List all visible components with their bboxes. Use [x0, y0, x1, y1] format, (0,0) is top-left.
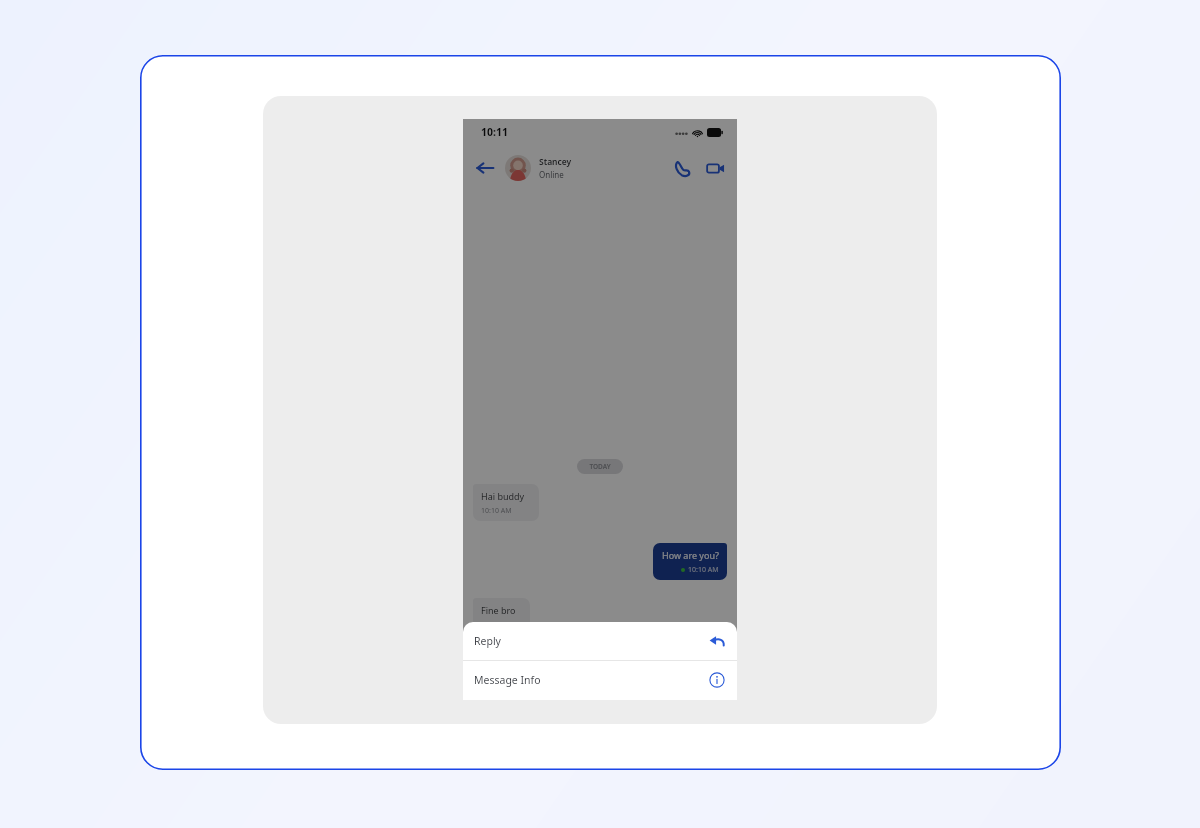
staticText: 10:10 AM — [481, 506, 512, 516]
staticText: I am fine too — [665, 655, 719, 667]
button[interactable]: Voice call — [673, 159, 692, 178]
staticText: Hai buddy — [481, 490, 525, 502]
staticText: 10:11 AM — [688, 671, 719, 681]
button[interactable] — [505, 155, 531, 181]
button[interactable]: Video call — [706, 159, 725, 178]
button[interactable]: Message Info — [463, 661, 737, 699]
button[interactable]: How are you? — [653, 543, 727, 580]
button[interactable]: Back — [475, 158, 495, 178]
button[interactable]: Fine bro — [473, 598, 530, 635]
staticText: 10:11 AM — [481, 620, 512, 630]
staticText: How are you? — [662, 549, 719, 561]
other: Reply — [709, 633, 725, 649]
staticText: Stancey — [539, 156, 572, 168]
staticText: Reply — [474, 634, 501, 648]
staticText: Online — [539, 169, 564, 180]
button[interactable]: I am fine too — [656, 649, 727, 686]
staticText: Message Info — [474, 673, 541, 687]
staticText: 10:11 — [481, 125, 508, 139]
button[interactable]: Hai buddy — [473, 484, 539, 521]
staticText: 10:10 AM — [688, 565, 719, 575]
other: Message Info — [709, 672, 725, 688]
button[interactable]: Reply — [463, 622, 737, 660]
staticText: TODAY — [589, 462, 611, 471]
staticText: Fine bro — [481, 604, 516, 616]
